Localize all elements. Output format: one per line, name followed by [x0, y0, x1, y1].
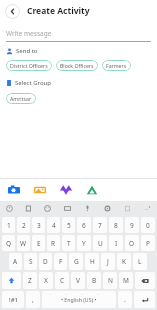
button[interactable]: P [141, 235, 155, 251]
button[interactable]: G [69, 253, 83, 270]
button[interactable]: Y [77, 235, 91, 251]
staticText: !#1 [9, 296, 18, 304]
button[interactable]: Shift [2, 272, 21, 289]
staticText: N [108, 276, 113, 285]
staticText: B [92, 276, 97, 285]
button[interactable]: • English (US) • [42, 291, 116, 308]
button[interactable]: Q [2, 235, 15, 251]
staticText: K [122, 257, 127, 266]
staticText: R [51, 239, 56, 248]
button[interactable]: !#1 [2, 291, 24, 308]
staticText: J [107, 257, 109, 266]
button[interactable]: R [47, 235, 60, 251]
button[interactable]: 9 [125, 217, 139, 233]
button[interactable]: Block Officers [56, 60, 98, 71]
button[interactable]: 8 [109, 217, 123, 233]
button[interactable]: 3 [32, 217, 45, 233]
button[interactable]: Enter [134, 291, 155, 308]
button[interactable]: I [109, 235, 123, 251]
staticText: 0 [146, 221, 150, 230]
button[interactable]: Z [23, 272, 37, 289]
button[interactable]: Backspace [135, 272, 155, 289]
button[interactable]: D [39, 253, 52, 270]
button[interactable]: . [118, 291, 132, 308]
button[interactable]: 1 [2, 217, 15, 233]
button[interactable]: , [26, 291, 40, 308]
button[interactable]: L [133, 253, 147, 270]
button[interactable]: F [54, 253, 67, 270]
button[interactable]: Gallery [34, 184, 46, 196]
button[interactable]: Voice input [77, 201, 97, 215]
button[interactable]: Farmers [102, 60, 131, 71]
staticText: Q [6, 239, 12, 248]
button[interactable]: V [71, 272, 85, 289]
staticText: . [124, 295, 126, 304]
staticText: • English (US) • [61, 296, 97, 303]
staticText: Write message [6, 29, 52, 38]
button[interactable]: More options [137, 201, 157, 215]
staticText: 5 [67, 221, 71, 230]
staticText: V [76, 276, 80, 285]
button[interactable]: 2 [17, 217, 30, 233]
button[interactable]: GIF [57, 201, 77, 215]
button[interactable]: 7 [93, 217, 107, 233]
staticText: Block Officers [60, 62, 94, 69]
button[interactable]: J [101, 253, 115, 270]
staticText: Z [28, 276, 32, 285]
button[interactable]: T [62, 235, 75, 251]
staticText: Farmers [106, 62, 127, 69]
button[interactable]: Settings [97, 201, 117, 215]
button[interactable]: 4 [47, 217, 60, 233]
button[interactable]: Dropbox [60, 184, 72, 196]
staticText: M [123, 276, 129, 285]
staticText: L [138, 257, 142, 266]
staticText: 3 [37, 221, 41, 230]
button[interactable]: C [55, 272, 69, 289]
button[interactable]: K [117, 253, 131, 270]
button[interactable]: W [17, 235, 30, 251]
button[interactable]: E [32, 235, 45, 251]
staticText: P [146, 239, 150, 248]
staticText: , [32, 295, 34, 304]
button[interactable]: Stickers [19, 201, 38, 215]
button[interactable]: U [93, 235, 107, 251]
button[interactable]: O [125, 235, 139, 251]
button[interactable]: N [103, 272, 117, 289]
button[interactable]: M [119, 272, 133, 289]
button[interactable]: District Officers [6, 60, 52, 71]
staticText: Amritsar [10, 95, 32, 102]
button[interactable]: S [24, 253, 37, 270]
staticText: A [13, 257, 18, 266]
staticText: 4 [52, 221, 56, 230]
button[interactable]: Camera [8, 184, 20, 196]
button[interactable]: 6 [77, 217, 91, 233]
button[interactable]: Recent [0, 201, 19, 215]
button[interactable]: A [9, 253, 22, 270]
staticText: 9 [130, 221, 134, 230]
button[interactable]: Clipboard [117, 201, 137, 215]
staticText: C [60, 276, 65, 285]
staticText: U [98, 239, 103, 248]
staticText: Y [82, 239, 86, 248]
staticText: Send to [16, 47, 38, 55]
staticText: Select Group [15, 79, 51, 87]
staticText: 2 [22, 221, 26, 230]
staticText: F [59, 257, 63, 266]
button[interactable]: H [85, 253, 99, 270]
staticText: I [115, 239, 118, 248]
button[interactable]: 5 [62, 217, 75, 233]
staticText: 6 [82, 221, 86, 230]
staticText: T [67, 239, 71, 248]
button[interactable]: Google Drive [86, 184, 98, 196]
staticText: E [37, 239, 41, 248]
staticText: Create Activity [27, 5, 90, 17]
staticText: X [44, 276, 48, 285]
button[interactable]: X [39, 272, 53, 289]
button[interactable]: 0 [141, 217, 155, 233]
staticText: District Officers [10, 62, 48, 69]
button[interactable]: Back [5, 4, 20, 19]
button[interactable]: Amritsar [6, 93, 36, 104]
button[interactable]: Emoji [38, 201, 57, 215]
button[interactable]: B [87, 272, 101, 289]
staticText: H [90, 257, 95, 266]
